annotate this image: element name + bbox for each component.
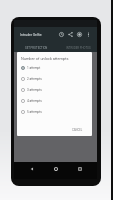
staticText: 5 attempts [27,110,42,114]
staticText: SET PROTECTION [25,46,48,49]
button[interactable]: Settings [75,27,84,42]
staticText: CANCEL [72,128,83,131]
button[interactable]: History [57,27,66,42]
staticText: 1 attempt [27,66,41,70]
button[interactable]: Back [25,162,38,175]
staticText: 4 attempts [27,99,42,103]
button[interactable]: INTRUDER PHOTOS [59,42,97,52]
button[interactable]: 5 attempts [17,106,92,117]
button[interactable]: Share [66,27,75,42]
staticText: 2 attempts [27,77,42,81]
staticText: Number of unlock attempts [21,56,69,61]
button[interactable]: 4 attempts [17,95,92,106]
button[interactable]: SET PROTECTION [14,42,59,52]
button[interactable]: 1 attempt [17,62,92,73]
button[interactable]: More options [84,27,93,42]
button[interactable]: CANCEL [71,127,84,132]
staticText: Intruder Selfie [20,33,42,37]
button[interactable]: Home [49,162,62,175]
button[interactable]: 2 attempts [17,73,92,84]
button[interactable]: 3 attempts [17,84,92,95]
staticText: 3 attempts [27,88,42,92]
staticText: INTRUDER PHOTOS [66,46,91,49]
button[interactable]: Recent apps [73,162,86,175]
